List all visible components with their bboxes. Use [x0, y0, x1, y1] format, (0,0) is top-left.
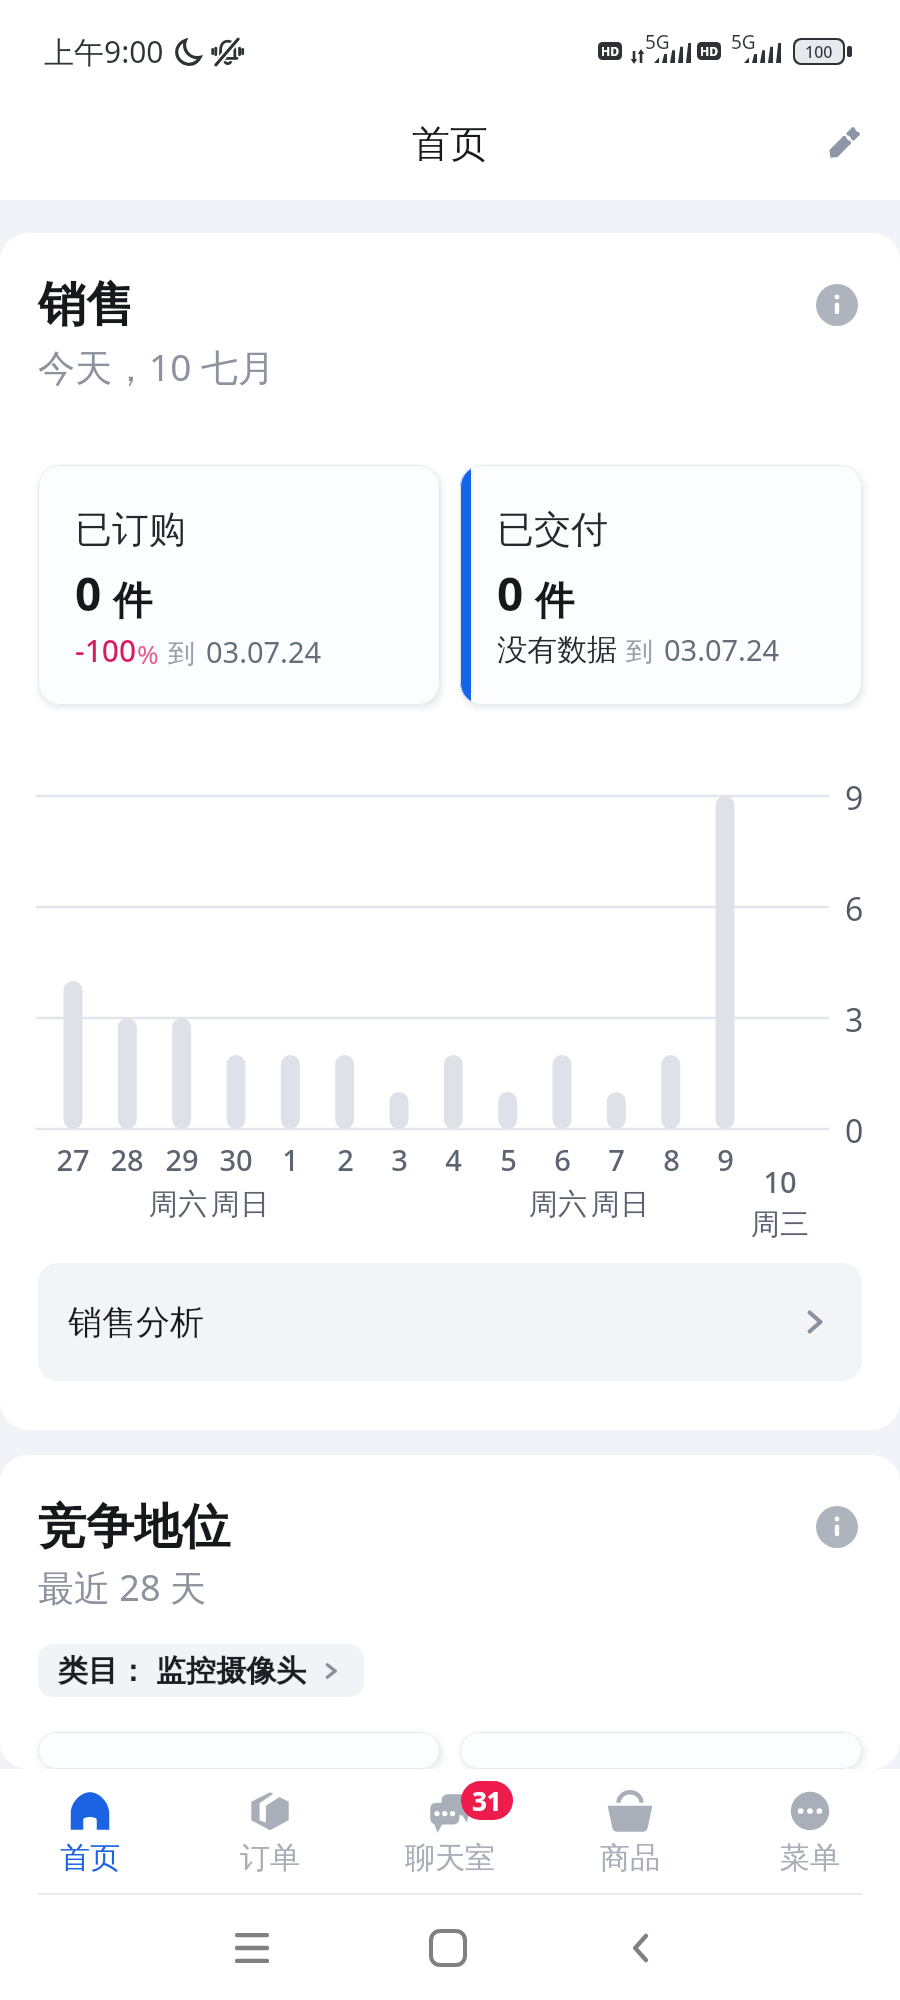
- button[interactable]: Recents: [212, 1908, 292, 1988]
- staticText: 商品: [600, 1839, 660, 1877]
- staticText: 5G: [731, 29, 756, 55]
- staticText: 3: [845, 998, 864, 1042]
- staticText: 0: [75, 562, 102, 625]
- staticText: 1: [282, 1140, 299, 1179]
- staticText: 6: [845, 887, 864, 931]
- staticText: 首页: [60, 1839, 120, 1877]
- staticText: 29: [165, 1140, 199, 1179]
- staticText: 8: [663, 1140, 680, 1179]
- staticText: 竞争地位: [38, 1497, 230, 1557]
- staticText: 2: [337, 1140, 354, 1179]
- button[interactable]: 商品: [540, 1769, 720, 1893]
- button[interactable]: 订单: [180, 1769, 360, 1893]
- staticText: 类目：: [58, 1652, 148, 1690]
- staticText: 03.07.24: [664, 630, 780, 669]
- staticText: 7: [608, 1140, 625, 1179]
- staticText: 3: [391, 1140, 408, 1179]
- staticText: 订单: [240, 1839, 300, 1877]
- staticText: 5G: [645, 29, 670, 55]
- staticText: 4: [445, 1140, 462, 1179]
- staticText: 100: [805, 41, 833, 63]
- staticText: 件: [113, 576, 152, 625]
- staticText: 9: [717, 1140, 734, 1179]
- staticText: 没有数据: [497, 631, 617, 669]
- staticText: 销售: [38, 275, 134, 335]
- staticText: 周日: [591, 1186, 649, 1223]
- staticText: 周六: [529, 1186, 587, 1223]
- staticText: 0: [845, 1109, 864, 1153]
- staticText: 到: [626, 635, 653, 669]
- button[interactable]: 首页: [0, 1769, 180, 1893]
- staticText: 上午9:00: [44, 31, 164, 72]
- staticText: 周三: [751, 1206, 809, 1243]
- staticText: 菜单: [780, 1839, 840, 1877]
- staticText: 监控摄像头: [156, 1652, 306, 1690]
- staticText: 周日: [211, 1186, 269, 1223]
- staticText: 聊天室: [405, 1839, 495, 1877]
- staticText: 6: [554, 1140, 571, 1179]
- staticText: 到: [168, 637, 195, 671]
- staticText: 已订购: [75, 506, 186, 553]
- button[interactable]: 31: [360, 1769, 540, 1893]
- staticText: 27: [56, 1140, 90, 1179]
- staticText: 件: [535, 576, 574, 625]
- staticText: 10: [763, 1162, 797, 1201]
- staticText: 30: [219, 1140, 253, 1179]
- staticText: 03.07.24: [206, 632, 322, 671]
- button[interactable]: Edit: [810, 111, 876, 177]
- button[interactable]: Info: [814, 1504, 860, 1550]
- staticText: 首页: [412, 120, 488, 168]
- staticText: %: [137, 636, 159, 671]
- button[interactable]: 类目：: [38, 1644, 364, 1697]
- staticText: HD: [700, 43, 718, 59]
- staticText: HD: [601, 43, 619, 59]
- staticText: 9: [845, 776, 864, 820]
- button[interactable]: 销售分析: [38, 1263, 862, 1381]
- button[interactable]: 已订购: [38, 465, 440, 705]
- staticText: 31: [472, 1783, 502, 1818]
- staticText: 28: [110, 1140, 144, 1179]
- button[interactable]: 已交付: [460, 465, 862, 705]
- button[interactable]: Info: [814, 282, 860, 328]
- staticText: 最近 28 天: [38, 1563, 206, 1612]
- staticText: 周六: [149, 1186, 207, 1223]
- button[interactable]: Home: [408, 1908, 488, 1988]
- staticText: 今天，10 七月: [38, 341, 275, 392]
- staticText: 已交付: [497, 506, 608, 553]
- button[interactable]: 菜单: [720, 1769, 900, 1893]
- staticText: 销售分析: [68, 1301, 798, 1344]
- staticText: 0: [497, 562, 524, 625]
- staticText: 5: [500, 1140, 517, 1179]
- button[interactable]: Back: [602, 1908, 682, 1988]
- staticText: -100: [75, 630, 137, 671]
